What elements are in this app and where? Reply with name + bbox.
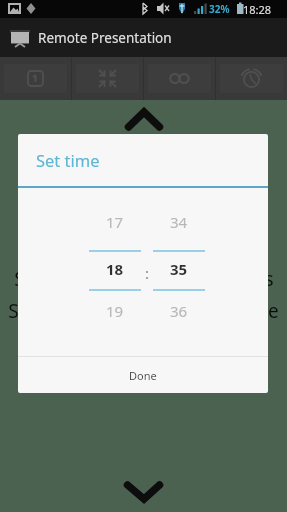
button[interactable]: 34 bbox=[153, 199, 205, 250]
button[interactable]: Remote Presentation bbox=[0, 18, 287, 57]
button[interactable]: Single slide bbox=[0, 57, 71, 100]
button[interactable]: Done bbox=[18, 357, 268, 393]
button[interactable]: Fullscreen bbox=[72, 57, 143, 100]
staticText: 17 bbox=[106, 212, 124, 232]
button[interactable]: Loop bbox=[144, 57, 215, 100]
staticText: : bbox=[145, 263, 150, 283]
staticText: 18 bbox=[106, 259, 124, 279]
staticText: Settings | Slideshow controls bbox=[14, 266, 274, 292]
staticText: 32% bbox=[209, 2, 230, 16]
staticText: 19 bbox=[106, 301, 124, 321]
staticText: 34 bbox=[170, 212, 188, 232]
staticText: 18:28 bbox=[243, 2, 272, 17]
button[interactable]: 17 bbox=[89, 199, 141, 250]
staticText: Slide timing and auto-advance bbox=[8, 298, 279, 324]
button[interactable]: Timer bbox=[216, 57, 287, 100]
button[interactable]: 19 bbox=[89, 291, 141, 331]
staticText: Remote Presentation bbox=[38, 29, 172, 47]
staticText: 36 bbox=[170, 301, 188, 321]
button[interactable]: 36 bbox=[153, 291, 205, 331]
staticText: 35 bbox=[170, 259, 188, 279]
staticText: Done bbox=[129, 368, 157, 383]
staticText: Set time bbox=[36, 149, 100, 171]
